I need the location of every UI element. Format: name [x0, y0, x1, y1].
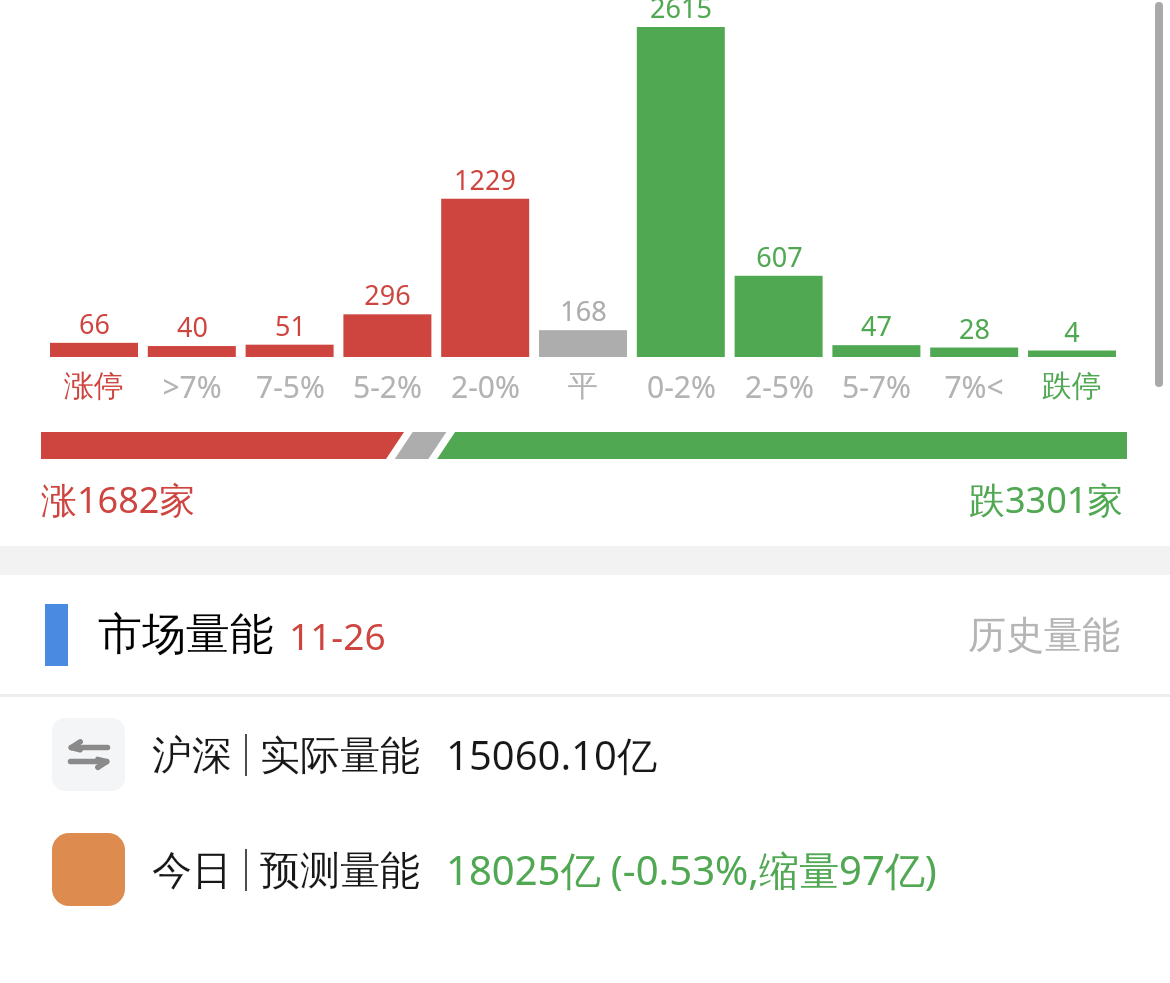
staticText: 预测量能: [260, 845, 420, 895]
button[interactable]: 0-2%: [637, 362, 725, 410]
staticText: 40: [177, 308, 208, 344]
staticText: 今日: [152, 845, 232, 895]
staticText: 市场量能: [98, 607, 274, 662]
staticText: 15060.10亿: [446, 727, 657, 782]
staticText: 47: [861, 307, 892, 343]
staticText: 5-2%: [353, 366, 422, 407]
button[interactable]: 预测量能: [0, 812, 1170, 927]
staticText: 0-2%: [647, 366, 716, 407]
button[interactable]: 平: [539, 362, 627, 410]
button[interactable]: 历史量能: [964, 607, 1124, 663]
staticText: 296: [364, 276, 411, 312]
staticText: 2-0%: [451, 366, 520, 407]
staticText: 涨停: [64, 367, 124, 405]
staticText: 涨1682家: [41, 475, 196, 524]
button[interactable]: [41, 432, 1127, 459]
staticText: 历史量能: [968, 611, 1120, 659]
staticText: 2615: [650, 0, 712, 25]
staticText: 1229: [454, 161, 516, 197]
staticText: 沪深: [152, 730, 232, 780]
button[interactable]: 跌停: [1028, 362, 1116, 410]
staticText: 28: [959, 310, 990, 346]
button[interactable]: 2-5%: [735, 362, 823, 410]
button[interactable]: 7%<: [930, 362, 1018, 410]
staticText: 66: [79, 305, 110, 341]
button[interactable]: 实际量能: [0, 697, 1170, 812]
staticText: >7%: [162, 366, 222, 407]
staticText: 跌停: [1042, 367, 1102, 405]
other: 预测量能: [52, 833, 125, 906]
staticText: 607: [756, 238, 803, 274]
button[interactable]: 2-0%: [441, 362, 529, 410]
staticText: 7%<: [944, 366, 1004, 407]
staticText: 4: [1064, 313, 1080, 349]
staticText: 平: [568, 367, 598, 405]
button[interactable]: 5-7%: [832, 362, 920, 410]
staticText: 168: [560, 292, 607, 328]
staticText: 5-7%: [842, 366, 911, 407]
staticText: 实际量能: [260, 730, 420, 780]
button[interactable]: 涨停: [50, 362, 138, 410]
staticText: 7-5%: [256, 366, 325, 407]
staticText: 2-5%: [745, 366, 814, 407]
staticText: 跌3301家: [969, 475, 1124, 524]
staticText: 11-26: [289, 610, 386, 660]
button[interactable]: 5-2%: [343, 362, 431, 410]
staticText: 18025亿 (-0.53%,缩量97亿): [446, 842, 937, 897]
staticText: 51: [275, 307, 306, 343]
button[interactable]: >7%: [148, 362, 236, 410]
other: 实际量能: [52, 718, 125, 791]
button[interactable]: 7-5%: [246, 362, 334, 410]
